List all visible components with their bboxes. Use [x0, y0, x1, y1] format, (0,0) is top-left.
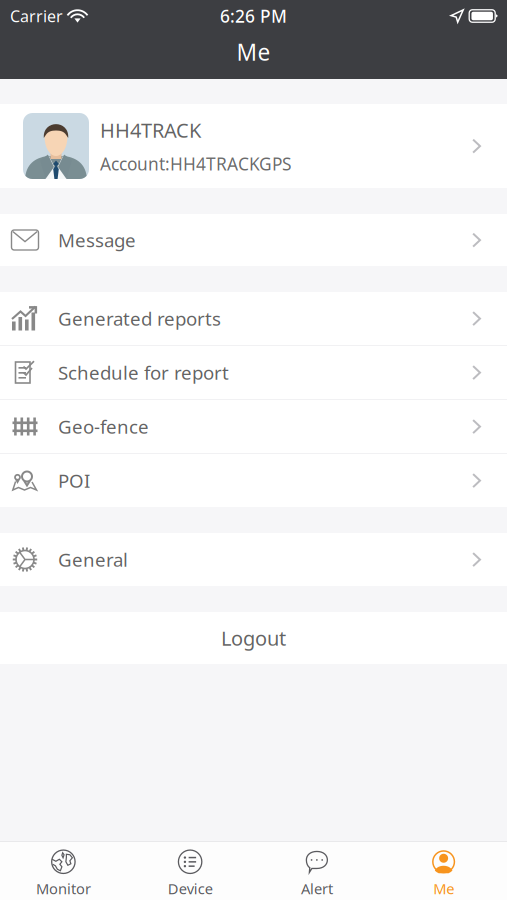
staticText: POI [58, 468, 90, 493]
staticText: Carrier [10, 5, 63, 27]
button[interactable]: HH4TRACK [0, 104, 507, 188]
staticText: HH4TRACK [100, 117, 201, 143]
staticText: Geo-fence [58, 414, 149, 439]
button[interactable]: Message [0, 214, 507, 266]
button[interactable]: Logout [0, 612, 507, 664]
button[interactable]: Schedule for report [0, 346, 507, 399]
staticText: 6:26 PM [220, 4, 287, 27]
staticText: Message [58, 228, 136, 252]
button[interactable]: POI [0, 454, 507, 507]
staticText: Logout [221, 625, 286, 651]
staticText: Schedule for report [58, 360, 229, 385]
button[interactable]: General [0, 533, 507, 586]
button[interactable]: Me [380, 837, 507, 900]
staticText: Monitor [36, 879, 91, 898]
button[interactable]: Monitor [0, 837, 127, 900]
button[interactable]: Alert [253, 837, 380, 900]
staticText: Account:HH4TRACKGPS [100, 152, 292, 175]
staticText: Alert [301, 879, 333, 898]
button[interactable]: Geo-fence [0, 400, 507, 453]
staticText: Device [168, 879, 213, 898]
button[interactable]: Generated reports [0, 292, 507, 345]
staticText: Me [433, 879, 454, 898]
button[interactable]: Device [127, 837, 254, 900]
staticText: Me [236, 37, 270, 67]
staticText: Generated reports [58, 306, 221, 331]
staticText: General [58, 547, 128, 572]
